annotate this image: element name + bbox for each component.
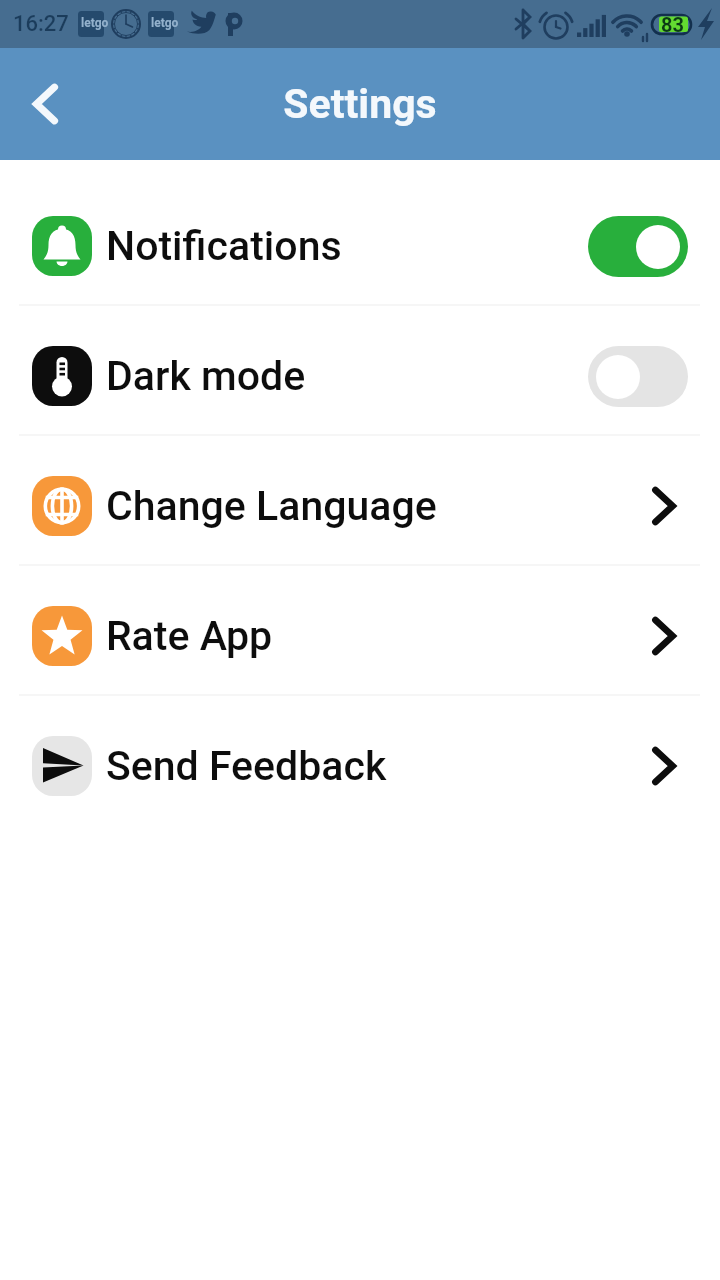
- button[interactable]: Send Feedback: [0, 696, 720, 824]
- staticText: letgo: [151, 16, 179, 30]
- staticText: Settings: [0, 80, 720, 128]
- staticText: 16:27: [13, 11, 69, 37]
- button[interactable]: Open Rate App: [632, 586, 720, 686]
- button[interactable]: Open Send Feedback: [632, 716, 720, 816]
- staticText: Notifications: [106, 222, 342, 270]
- button[interactable]: Rate App: [0, 566, 720, 694]
- staticText: Rate App: [106, 612, 273, 660]
- staticText: 83: [661, 13, 684, 36]
- staticText: Change Language: [106, 482, 437, 530]
- button[interactable]: Switch on: [588, 196, 720, 296]
- button[interactable]: Switch off: [588, 326, 720, 426]
- button[interactable]: Notifications: [0, 176, 720, 304]
- button[interactable]: Back: [0, 48, 88, 160]
- button[interactable]: Open Change Language: [632, 456, 720, 556]
- staticText: letgo: [81, 16, 109, 30]
- staticText: Dark mode: [106, 352, 306, 400]
- button[interactable]: Dark mode: [0, 306, 720, 434]
- button[interactable]: Change Language: [0, 436, 720, 564]
- staticText: Send Feedback: [106, 742, 387, 790]
